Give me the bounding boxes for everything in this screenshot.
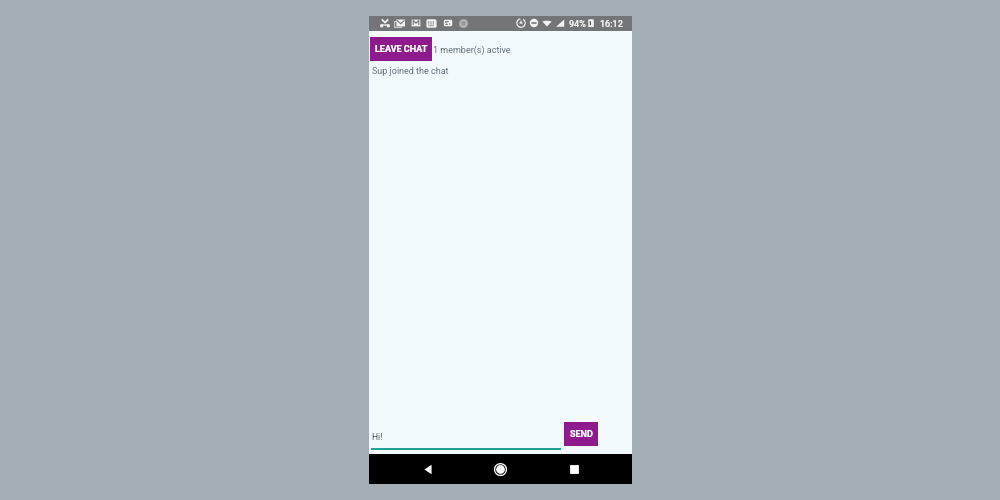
- staticText: SEND: [570, 429, 593, 440]
- button[interactable]: Recent apps: [555, 454, 593, 484]
- staticText: Hi!: [372, 432, 383, 442]
- staticText: 1 member(s) active: [433, 45, 511, 56]
- button[interactable]: LEAVE CHAT: [370, 37, 432, 61]
- staticText: LEAVE CHAT: [375, 44, 428, 55]
- button[interactable]: Hi!: [371, 426, 561, 448]
- button[interactable]: Back: [409, 454, 447, 484]
- button[interactable]: SEND: [564, 422, 598, 446]
- button[interactable]: Home: [481, 454, 519, 484]
- staticText: 94%: [569, 19, 586, 30]
- staticText: 16:12: [600, 19, 623, 30]
- staticText: Sup joined the chat: [372, 66, 449, 77]
